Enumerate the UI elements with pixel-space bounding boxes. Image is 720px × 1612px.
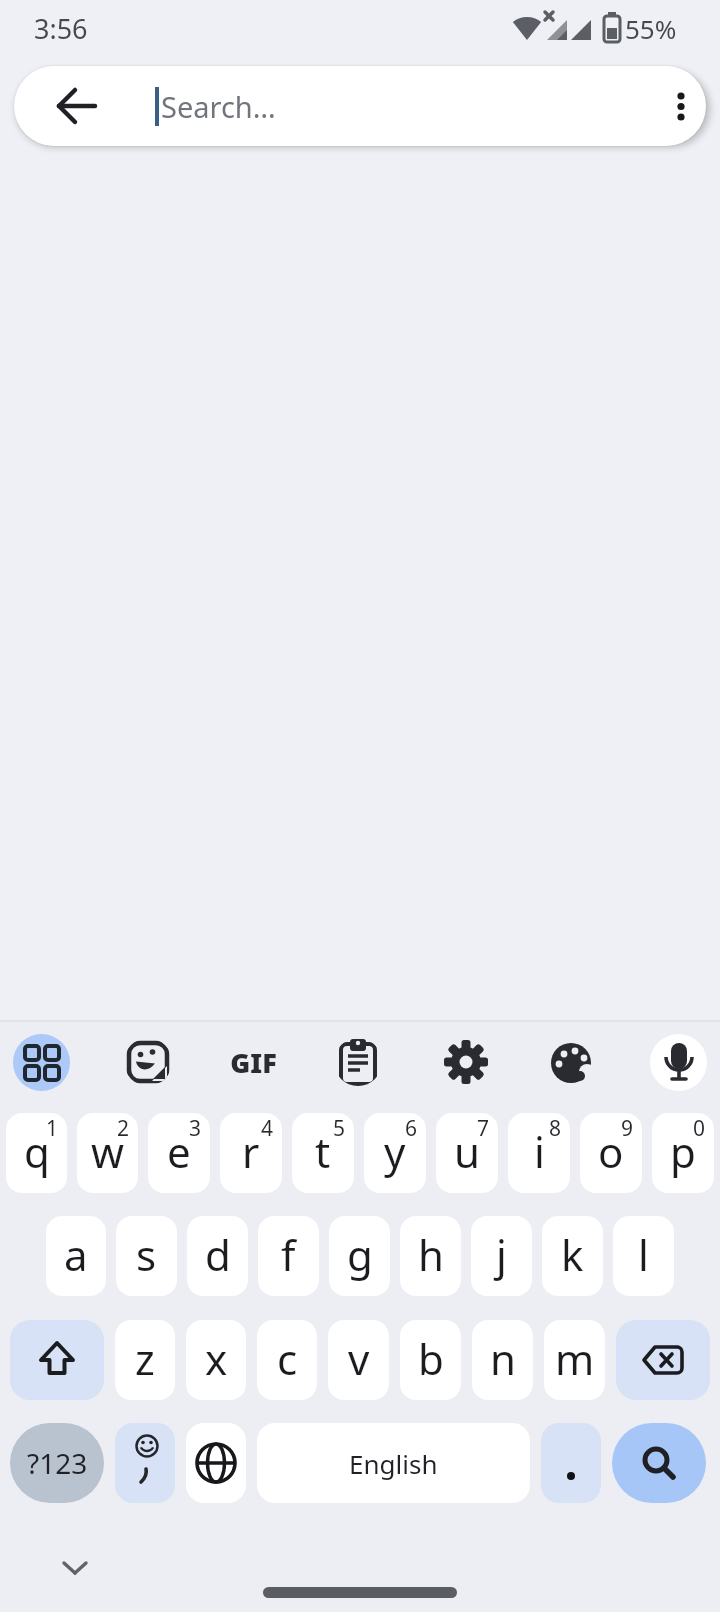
staticText: 2 [117, 1114, 130, 1143]
button[interactable]: j [471, 1216, 532, 1296]
button[interactable] [115, 1423, 175, 1503]
staticText: c [277, 1330, 298, 1387]
staticText: v [348, 1330, 370, 1387]
staticText: 55% [625, 11, 677, 46]
button[interactable]: m [544, 1320, 605, 1400]
button[interactable]: d [187, 1216, 248, 1296]
button[interactable]: c [257, 1320, 317, 1400]
button[interactable]: s [116, 1216, 177, 1296]
staticText: w [91, 1123, 125, 1180]
button[interactable]: English [257, 1423, 530, 1503]
button[interactable] [10, 1320, 104, 1400]
button[interactable]: i [508, 1113, 570, 1193]
staticText: i [534, 1123, 545, 1180]
button[interactable] [263, 1587, 457, 1598]
button[interactable] [541, 1423, 601, 1503]
staticText: 3:56 [34, 10, 88, 47]
staticText: d [205, 1226, 231, 1283]
button[interactable]: g [329, 1216, 390, 1296]
button[interactable]: r [220, 1113, 282, 1193]
button[interactable]: v [328, 1320, 389, 1400]
staticText: Search… [161, 87, 276, 126]
staticText: o [598, 1123, 624, 1180]
staticText: s [136, 1226, 157, 1283]
button[interactable] [334, 1038, 382, 1086]
staticText: 1 [46, 1114, 59, 1143]
button[interactable]: q [6, 1113, 67, 1193]
button[interactable]: b [400, 1320, 461, 1400]
staticText: y [384, 1123, 406, 1180]
button[interactable]: z [115, 1320, 175, 1400]
staticText: r [242, 1123, 260, 1180]
staticText: n [490, 1330, 516, 1387]
staticText: e [167, 1123, 191, 1180]
button[interactable]: a [46, 1216, 106, 1296]
staticText: p [670, 1123, 696, 1180]
button[interactable] [616, 1320, 710, 1400]
button[interactable]: k [542, 1216, 603, 1296]
staticText: 9 [621, 1114, 634, 1143]
button[interactable]: w [77, 1113, 138, 1193]
button[interactable]: h [400, 1216, 461, 1296]
staticText: g [347, 1226, 373, 1283]
button[interactable] [13, 1034, 70, 1091]
button[interactable]: x [186, 1320, 246, 1400]
button[interactable] [650, 1034, 707, 1091]
staticText: f [281, 1226, 296, 1283]
button[interactable] [442, 1038, 490, 1086]
staticText: 3 [189, 1114, 202, 1143]
staticText: a [64, 1226, 88, 1283]
button[interactable]: e [148, 1113, 210, 1193]
staticText: b [418, 1330, 444, 1387]
staticText: z [135, 1330, 155, 1387]
staticText: x [205, 1330, 228, 1387]
button[interactable] [612, 1423, 706, 1503]
button[interactable]: ?123 [10, 1423, 104, 1503]
button[interactable] [655, 80, 706, 132]
staticText: 4 [261, 1114, 274, 1143]
button[interactable] [547, 1038, 595, 1086]
button[interactable] [124, 1038, 172, 1086]
staticText: 8 [549, 1114, 562, 1143]
staticText: j [496, 1226, 507, 1283]
staticText: GIF [230, 1044, 277, 1081]
button[interactable] [55, 1552, 95, 1582]
staticText: 6 [405, 1114, 418, 1143]
button[interactable]: o [580, 1113, 642, 1193]
button[interactable]: u [436, 1113, 498, 1193]
button[interactable]: p [652, 1113, 714, 1193]
button[interactable]: n [472, 1320, 533, 1400]
button[interactable] [51, 80, 103, 132]
staticText: l [638, 1226, 649, 1283]
button[interactable]: f [258, 1216, 319, 1296]
button[interactable] [186, 1423, 246, 1503]
staticText: m [555, 1330, 595, 1387]
staticText: English [349, 1446, 438, 1481]
staticText: 7 [477, 1114, 490, 1143]
staticText: 0 [693, 1114, 706, 1143]
button[interactable]: l [613, 1216, 674, 1296]
button[interactable]: t [292, 1113, 354, 1193]
staticText: ?123 [27, 1444, 88, 1482]
button[interactable]: y [364, 1113, 426, 1193]
staticText: 5 [333, 1114, 346, 1143]
staticText: u [454, 1123, 480, 1180]
button[interactable]: GIF [224, 1038, 282, 1086]
staticText: t [315, 1123, 331, 1180]
staticText: q [24, 1123, 50, 1180]
staticText: h [418, 1226, 444, 1283]
staticText: k [561, 1226, 584, 1283]
